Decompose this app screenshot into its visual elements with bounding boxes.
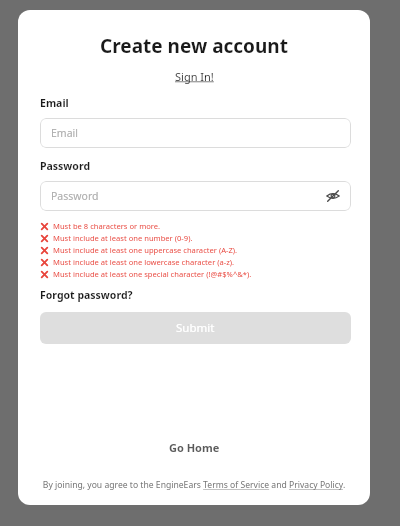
staticText: Email — [40, 96, 69, 110]
staticText: Submit — [176, 320, 215, 336]
staticText: Must include at least one uppercase char… — [53, 245, 238, 255]
staticText: By joining, you agree to the EngineEars … — [40, 479, 348, 491]
staticText: Sign In! — [175, 69, 214, 84]
staticText: Create new account — [18, 33, 370, 59]
button[interactable]: Email — [40, 118, 351, 148]
staticText: Password — [40, 159, 91, 173]
staticText: Must be 8 characters or more. — [53, 221, 161, 231]
button[interactable]: Show password — [323, 186, 343, 206]
button[interactable]: Sign In! — [171, 68, 218, 85]
staticText: Email — [51, 126, 78, 140]
staticText: Must include at least one special charac… — [53, 269, 252, 279]
button[interactable]: Password — [40, 181, 351, 211]
button[interactable]: Forgot password? — [40, 288, 133, 302]
staticText: Must include at least one number (0-9). — [53, 233, 193, 243]
staticText: Go Home — [169, 440, 220, 455]
button[interactable]: By joining, you agree to the EngineEars … — [40, 479, 348, 491]
staticText: Password — [51, 189, 99, 203]
button[interactable]: Submit — [40, 312, 351, 344]
staticText: Must include at least one lowercase char… — [53, 257, 235, 267]
button[interactable]: Go Home — [163, 438, 226, 457]
staticText: Forgot password? — [40, 288, 133, 302]
